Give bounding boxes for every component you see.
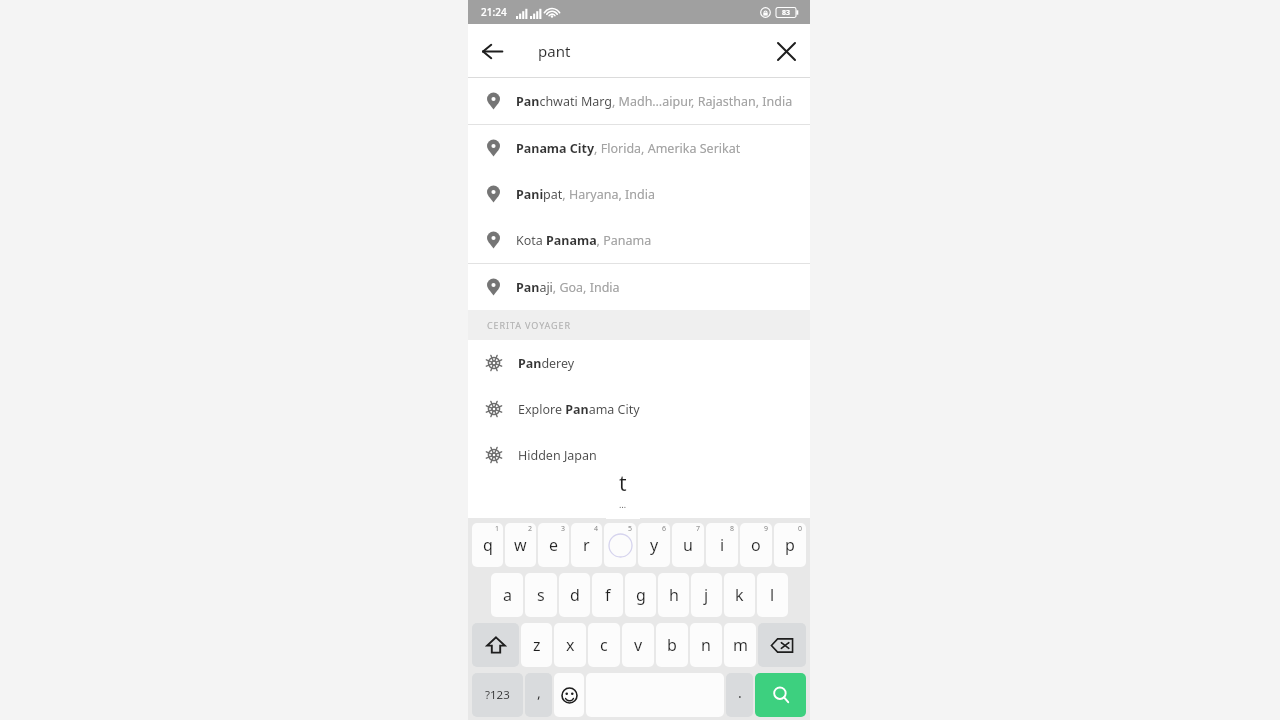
staticText: , xyxy=(537,683,541,702)
button[interactable]: , xyxy=(525,673,552,717)
button[interactable]: Clear search xyxy=(762,27,810,75)
staticText: . xyxy=(738,683,742,702)
button[interactable]: Panchwati Marg, Madh…aipur, Rajasthan, I… xyxy=(468,78,810,124)
staticText: pant xyxy=(538,41,571,61)
staticText: 83 xyxy=(782,8,791,18)
staticText: b xyxy=(667,634,677,656)
button[interactable]: g xyxy=(625,573,656,617)
staticText: Panama City, Florida, Amerika Serikat xyxy=(516,140,741,157)
button[interactable]: h xyxy=(658,573,689,617)
button[interactable]: n xyxy=(690,623,722,667)
staticText: m xyxy=(733,634,748,656)
staticText: r xyxy=(583,534,590,556)
staticText: Panderey xyxy=(518,355,575,372)
button[interactable]: x xyxy=(554,623,586,667)
staticText: a xyxy=(503,584,512,606)
staticText: 3 xyxy=(561,524,566,534)
button[interactable]: s xyxy=(525,573,557,617)
staticText: c xyxy=(600,634,608,656)
staticText: CERITA VOYAGER xyxy=(487,319,571,331)
button[interactable]: 5 xyxy=(604,523,636,567)
button[interactable]: j xyxy=(691,573,722,617)
button[interactable]: Panaji, Goa, India xyxy=(468,264,810,310)
staticText: 7 xyxy=(696,524,701,534)
staticText: q xyxy=(483,534,493,556)
staticText: d xyxy=(570,584,580,606)
button[interactable]: u xyxy=(672,523,704,567)
staticText: i xyxy=(720,534,725,556)
button[interactable]: b xyxy=(656,623,688,667)
button[interactable]: l xyxy=(757,573,788,617)
button[interactable]: m xyxy=(724,623,756,667)
button[interactable]: a xyxy=(491,573,523,617)
staticText: n xyxy=(701,634,711,656)
button[interactable]: k xyxy=(724,573,755,617)
button[interactable]: Kota Panama, Panama xyxy=(468,217,810,263)
button[interactable]: y xyxy=(638,523,670,567)
staticText: v xyxy=(634,634,643,656)
staticText: Hidden Japan xyxy=(518,447,597,464)
staticText: j xyxy=(704,584,709,606)
button[interactable]: Panderey xyxy=(468,340,810,386)
button[interactable]: Back xyxy=(468,27,516,75)
button[interactable]: r xyxy=(571,523,602,567)
button[interactable]: e xyxy=(538,523,569,567)
staticText: … xyxy=(619,498,627,510)
staticText: p xyxy=(785,534,795,556)
button[interactable]: p xyxy=(774,523,806,567)
staticText: Kota Panama, Panama xyxy=(516,232,652,249)
staticText: Panaji, Goa, India xyxy=(516,279,620,296)
button[interactable]: d xyxy=(559,573,590,617)
staticText: 4 xyxy=(594,524,599,534)
staticText: 2 xyxy=(528,524,533,534)
button[interactable]: w xyxy=(505,523,536,567)
button[interactable]: Panama City, Florida, Amerika Serikat xyxy=(468,125,810,171)
staticText: y xyxy=(650,534,659,556)
staticText: ?123 xyxy=(485,687,510,703)
staticText: o xyxy=(751,534,761,556)
button[interactable]: o xyxy=(740,523,772,567)
button[interactable]: . xyxy=(726,673,753,717)
staticText: Explore Panama City xyxy=(518,401,640,418)
button[interactable]: q xyxy=(472,523,503,567)
staticText: z xyxy=(533,634,541,656)
staticText: l xyxy=(770,584,775,606)
staticText: s xyxy=(537,584,545,606)
staticText: w xyxy=(514,534,527,556)
button[interactable]: Shift xyxy=(472,623,519,667)
button[interactable]: c xyxy=(588,623,620,667)
staticText: 9 xyxy=(764,524,769,534)
staticText: u xyxy=(683,534,693,556)
staticText: 0 xyxy=(798,524,803,534)
staticText: Panchwati Marg, Madh…aipur, Rajasthan, I… xyxy=(516,93,793,110)
staticText: 21:24 xyxy=(481,5,507,19)
staticText: t xyxy=(619,469,627,498)
button[interactable]: i xyxy=(706,523,738,567)
staticText: 5 xyxy=(628,524,633,534)
button[interactable]: Panipat, Haryana, India xyxy=(468,171,810,217)
staticText: g xyxy=(636,584,646,606)
staticText: k xyxy=(735,584,744,606)
staticText: f xyxy=(605,584,611,606)
staticText: x xyxy=(566,634,575,656)
staticText: Panipat, Haryana, India xyxy=(516,186,655,203)
button[interactable]: v xyxy=(622,623,654,667)
button[interactable]: Explore Panama City xyxy=(468,386,810,432)
button[interactable]: Search xyxy=(755,673,806,717)
staticText: 6 xyxy=(662,524,667,534)
staticText: 1 xyxy=(495,524,500,534)
staticText: e xyxy=(549,534,559,556)
button[interactable]: ?123 xyxy=(472,673,523,717)
button[interactable]: Hidden Japan xyxy=(468,432,810,478)
staticText: 8 xyxy=(730,524,735,534)
staticText: h xyxy=(669,584,679,606)
button[interactable]: Emoji xyxy=(554,673,584,717)
button[interactable]: z xyxy=(521,623,552,667)
button[interactable]: Backspace xyxy=(758,623,806,667)
button[interactable]: f xyxy=(592,573,623,617)
